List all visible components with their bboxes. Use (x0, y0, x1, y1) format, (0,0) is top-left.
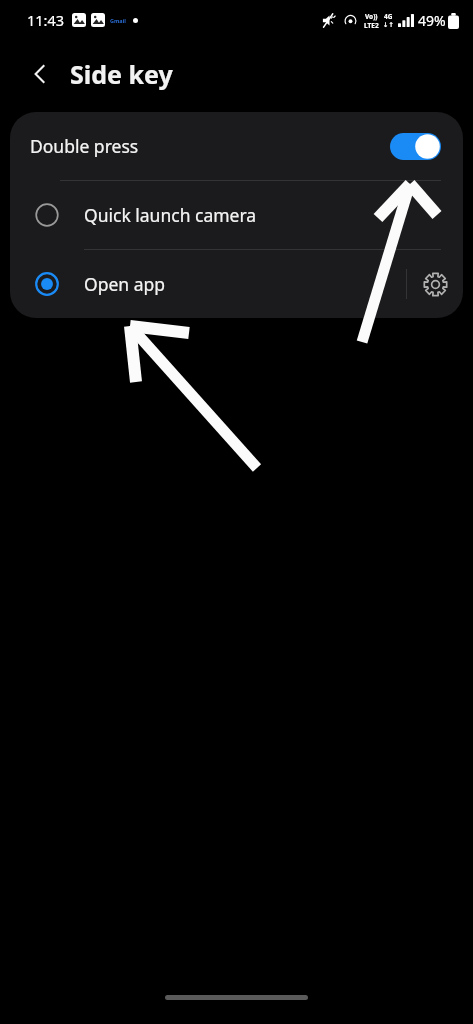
button[interactable]: Navigate up (18, 52, 62, 96)
button[interactable]: Settings (407, 250, 463, 318)
staticText: Gmail (110, 17, 126, 24)
staticText: Quick launch camera (84, 203, 257, 227)
staticText: Side key (70, 57, 173, 91)
button[interactable]: Open app (10, 250, 406, 318)
staticText: Open app (84, 272, 166, 296)
staticText: Vo)) (365, 12, 378, 21)
button[interactable]: Quick launch camera (10, 181, 463, 249)
staticText: ↓↑ (383, 21, 394, 29)
staticText: 4G (384, 12, 393, 21)
button[interactable]: Double press (10, 112, 463, 180)
staticText: LTE2 (364, 21, 379, 30)
staticText: Double press (30, 134, 139, 158)
button[interactable]: Double press toggle (390, 133, 441, 160)
staticText: 11:43 (27, 10, 65, 30)
staticText: 49% (418, 11, 446, 30)
